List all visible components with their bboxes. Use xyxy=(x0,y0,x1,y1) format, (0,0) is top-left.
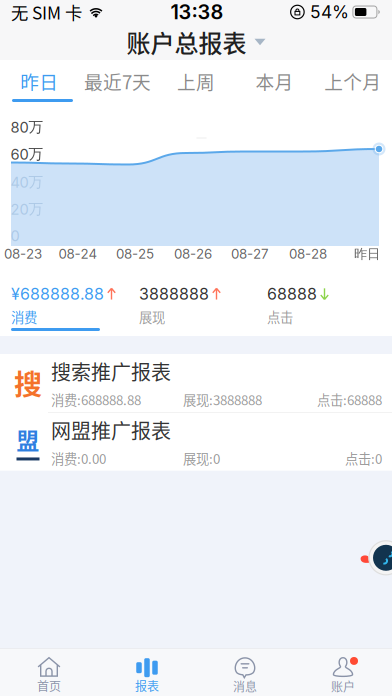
staticText: ¥688888.88 xyxy=(11,284,104,304)
staticText: 昨日 xyxy=(354,246,380,262)
button[interactable]: 最近7天 xyxy=(78,60,157,102)
button[interactable]: 上个月 xyxy=(314,60,392,102)
staticText: 首页 xyxy=(37,677,61,695)
button[interactable]: 智能助手 xyxy=(368,540,392,575)
staticText: 08-28 xyxy=(289,246,327,262)
button[interactable]: 3888888 xyxy=(139,286,261,331)
staticText: 40万 xyxy=(10,173,43,191)
staticText: 账户总报表 xyxy=(126,25,246,59)
button[interactable]: 首页 xyxy=(0,649,98,696)
button[interactable]: 账户总报表 xyxy=(120,24,271,60)
staticText: 80万 xyxy=(10,118,43,136)
staticText: 08-27 xyxy=(231,246,269,262)
staticText: 账户 xyxy=(331,678,355,695)
button[interactable]: ¥688888.88 xyxy=(11,286,133,331)
button[interactable]: 本月 xyxy=(235,60,314,102)
staticText: 网盟推广报表 xyxy=(51,416,171,445)
staticText: 最近7天 xyxy=(84,67,151,94)
staticText: 08-26 xyxy=(174,246,212,262)
button[interactable]: 消息 xyxy=(196,649,294,696)
staticText: 消息 xyxy=(233,678,257,695)
staticText: 上周 xyxy=(177,67,215,94)
button[interactable]: 上周 xyxy=(157,60,235,102)
staticText: 08-24 xyxy=(58,246,97,262)
button[interactable]: 报表 xyxy=(98,649,196,696)
staticText: 盟 xyxy=(16,423,39,456)
staticText: 无 SIM 卡 xyxy=(11,0,82,25)
staticText: 点击:68888 xyxy=(317,390,382,409)
staticText: 报表 xyxy=(135,677,159,695)
staticText: 搜 xyxy=(14,363,42,403)
staticText: 54% xyxy=(310,1,349,22)
staticText: 展现:3888888 xyxy=(183,390,262,409)
staticText: 点击:0 xyxy=(345,449,382,468)
staticText: 展现 xyxy=(139,307,165,326)
button[interactable]: 盟 xyxy=(0,413,392,471)
staticText: 展现:0 xyxy=(183,449,220,468)
staticText: 搜索推广报表 xyxy=(51,357,171,386)
staticText: 08-23 xyxy=(4,246,42,262)
button[interactable]: 68888 xyxy=(267,286,389,331)
staticText: 消费:688888.88 xyxy=(51,390,141,409)
staticText: 13:38 xyxy=(170,0,223,24)
staticText: 消费 xyxy=(11,307,37,326)
staticText: 60万 xyxy=(10,145,43,163)
staticText: 昨日 xyxy=(20,67,58,94)
staticText: 上个月 xyxy=(324,67,381,94)
staticText: 20万 xyxy=(10,200,43,218)
button[interactable]: 昨日 xyxy=(0,60,78,102)
staticText: 3888888 xyxy=(139,284,209,304)
button[interactable]: 账户 xyxy=(294,649,392,696)
staticText: 08-25 xyxy=(116,246,154,262)
staticText: 本月 xyxy=(255,67,293,94)
staticText: 0 xyxy=(10,227,19,245)
staticText: 消费:0.00 xyxy=(51,449,106,468)
staticText: 点击 xyxy=(267,307,293,326)
button[interactable]: 搜 xyxy=(0,354,392,412)
staticText: 68888 xyxy=(267,284,317,304)
